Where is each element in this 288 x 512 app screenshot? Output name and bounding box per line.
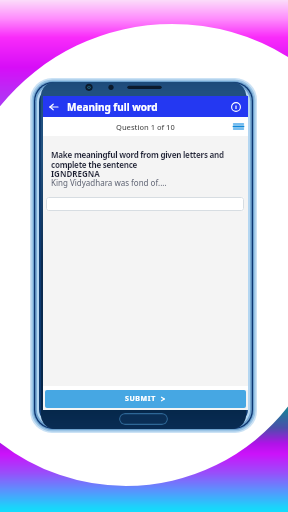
staticText: Question 1 of 10 bbox=[116, 122, 175, 132]
staticText: Meaning full word bbox=[67, 100, 158, 114]
staticText: King Vidyadhara was fond of.... bbox=[51, 177, 167, 188]
button[interactable]: SUBMIT bbox=[45, 390, 246, 408]
staticText: complete the sentence bbox=[51, 159, 138, 170]
button[interactable]: Back bbox=[47, 100, 61, 114]
staticText: SUBMIT bbox=[125, 394, 156, 404]
button[interactable] bbox=[46, 197, 244, 211]
staticText: IGNDREGNA bbox=[51, 168, 100, 179]
button[interactable]: Menu bbox=[231, 119, 246, 134]
button[interactable]: Info bbox=[229, 100, 243, 114]
button[interactable]: Home bbox=[119, 413, 168, 425]
staticText: Make meaningful word from given letters … bbox=[51, 149, 224, 160]
